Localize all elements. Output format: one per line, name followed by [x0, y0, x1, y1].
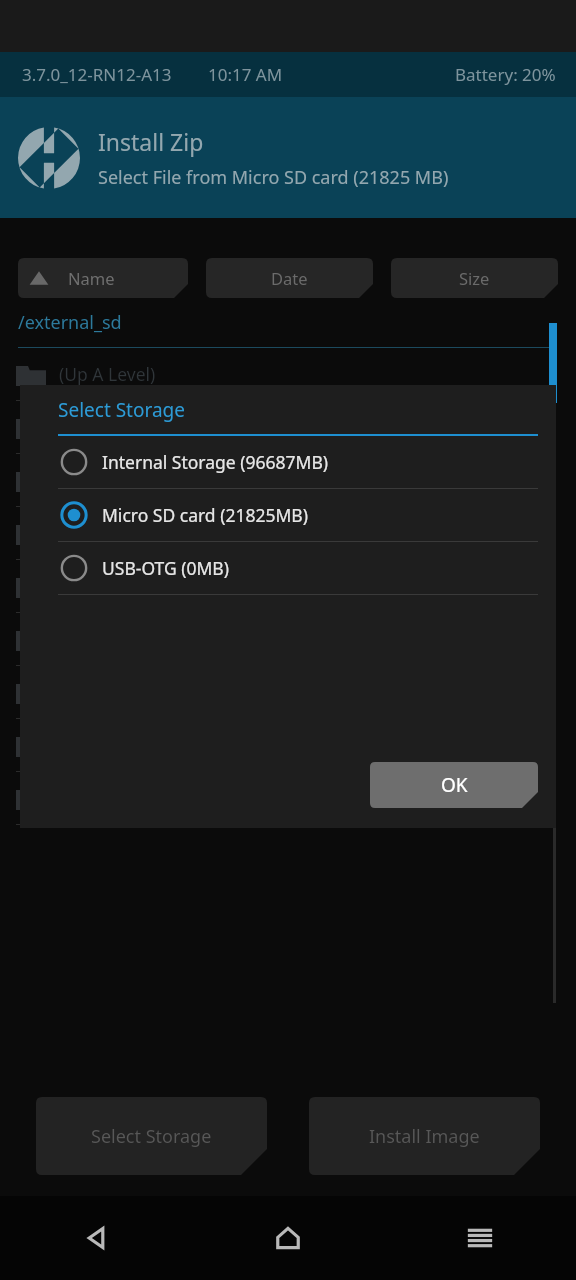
staticText: Internal Storage (96687MB): [102, 450, 329, 474]
button[interactable]: Menu: [384, 1196, 576, 1280]
staticText: Date: [271, 267, 308, 289]
staticText: 3.7.0_12-RN12-A13: [22, 63, 172, 86]
button[interactable]: Home: [192, 1196, 384, 1280]
staticText: USB-OTG (0MB): [102, 556, 229, 580]
button[interactable]: H: [0, 772, 576, 825]
button[interactable]: Size: [391, 258, 558, 298]
staticText: OK: [441, 772, 468, 798]
staticText: /external_sd: [18, 310, 122, 335]
button[interactable]: Backup: [0, 507, 576, 560]
staticText: DCIM: [59, 574, 105, 598]
button[interactable]: Micro SD card (21825MB): [58, 489, 538, 542]
button[interactable]: OK: [370, 762, 538, 808]
staticText: Select Storage: [91, 1124, 212, 1149]
button[interactable]: Android: [0, 454, 576, 507]
staticText: Android: [59, 468, 125, 492]
button[interactable]: Back: [0, 1196, 192, 1280]
staticText: Install Image: [369, 1124, 480, 1149]
button[interactable]: Documents: [0, 613, 576, 666]
button[interactable]: (Up A Level): [0, 348, 576, 401]
button[interactable]: Date: [206, 258, 373, 298]
staticText: Select File from Micro SD card (21825 MB…: [98, 165, 449, 190]
staticText: Micro SD card (21825MB): [102, 503, 308, 527]
staticText: Backup: [59, 521, 120, 545]
button[interactable]: USB-OTG (0MB): [58, 542, 538, 595]
button[interactable]: Alarms: [0, 401, 576, 454]
button[interactable]: Name: [18, 258, 188, 298]
button[interactable]: Install Image: [309, 1097, 540, 1175]
staticText: 10:17 AM: [208, 63, 283, 86]
staticText: (Up A Level): [59, 362, 156, 386]
staticText: Select Storage: [58, 397, 185, 423]
button[interactable]: Fox: [0, 719, 576, 772]
staticText: Install Zip: [98, 126, 204, 157]
button[interactable]: Download: [0, 666, 576, 719]
staticText: Battery: 20%: [455, 63, 556, 86]
button[interactable]: Internal Storage (96687MB): [58, 436, 538, 489]
staticText: Size: [459, 267, 490, 289]
staticText: Name: [68, 267, 115, 289]
staticText: Alarms: [59, 415, 117, 439]
button[interactable]: Select Storage: [36, 1097, 267, 1175]
button[interactable]: DCIM: [0, 560, 576, 613]
